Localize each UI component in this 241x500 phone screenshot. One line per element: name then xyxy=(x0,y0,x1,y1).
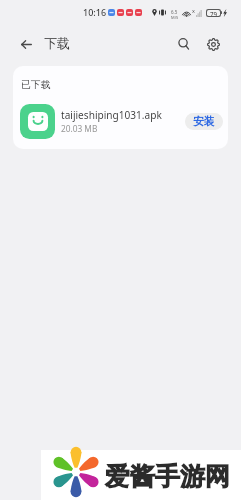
staticText: 爱酱手游网 xyxy=(105,461,230,492)
staticText: 下载 xyxy=(44,35,70,51)
staticText: 10:16 xyxy=(83,6,107,18)
button[interactable]: Back xyxy=(11,31,37,57)
staticText: 79 xyxy=(210,10,218,16)
button[interactable]: taijieshiping1031.apk xyxy=(20,101,223,141)
button[interactable]: 安装 xyxy=(185,113,223,130)
button[interactable]: Settings xyxy=(200,31,226,57)
staticText: M/S xyxy=(171,15,179,20)
staticText: 20.03 MB xyxy=(61,123,98,134)
staticText: 已下载 xyxy=(21,79,51,91)
button[interactable]: Search xyxy=(171,31,197,57)
staticText: 安装 xyxy=(193,115,215,129)
staticText: x xyxy=(192,7,195,14)
staticText: taijieshiping1031.apk xyxy=(61,108,162,122)
staticText: 6.5 xyxy=(171,9,178,15)
